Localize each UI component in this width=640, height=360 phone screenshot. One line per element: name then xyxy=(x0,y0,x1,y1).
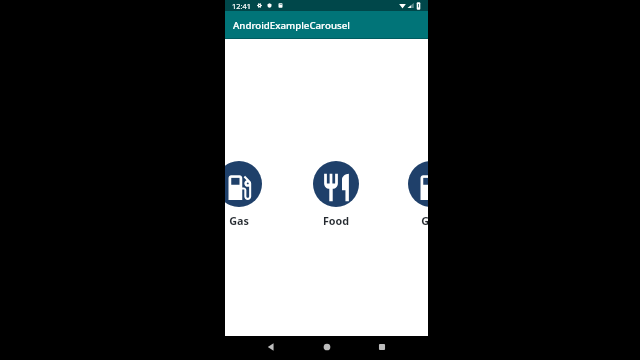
staticText: AndroidExampleCarousel xyxy=(233,19,350,32)
staticText: Gas xyxy=(225,213,262,228)
button[interactable]: Food xyxy=(313,161,359,228)
button[interactable]: Back xyxy=(262,338,280,356)
button[interactable]: Recents xyxy=(373,338,391,356)
button[interactable]: Gas xyxy=(225,161,262,228)
staticText: 12:41 xyxy=(232,1,251,11)
staticText: Food xyxy=(313,213,359,228)
button[interactable]: Gas xyxy=(408,161,428,228)
button[interactable]: Home xyxy=(318,338,336,356)
staticText: Gas xyxy=(408,213,428,228)
